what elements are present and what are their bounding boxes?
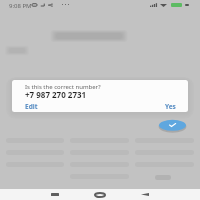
staticText: Is this the correct number? xyxy=(25,83,101,91)
button[interactable]: Home xyxy=(85,189,115,200)
button[interactable]: Back xyxy=(130,189,160,200)
staticText: +7 987 270 2731 xyxy=(25,89,87,100)
staticText: Edit xyxy=(25,102,38,111)
staticText: 9:08 PM xyxy=(9,2,32,10)
button[interactable]: Yes xyxy=(165,102,176,111)
button[interactable]: Recents xyxy=(40,189,70,200)
button[interactable]: Edit xyxy=(25,102,38,111)
button[interactable]: Confirm xyxy=(156,116,189,135)
staticText: Yes xyxy=(165,102,176,111)
